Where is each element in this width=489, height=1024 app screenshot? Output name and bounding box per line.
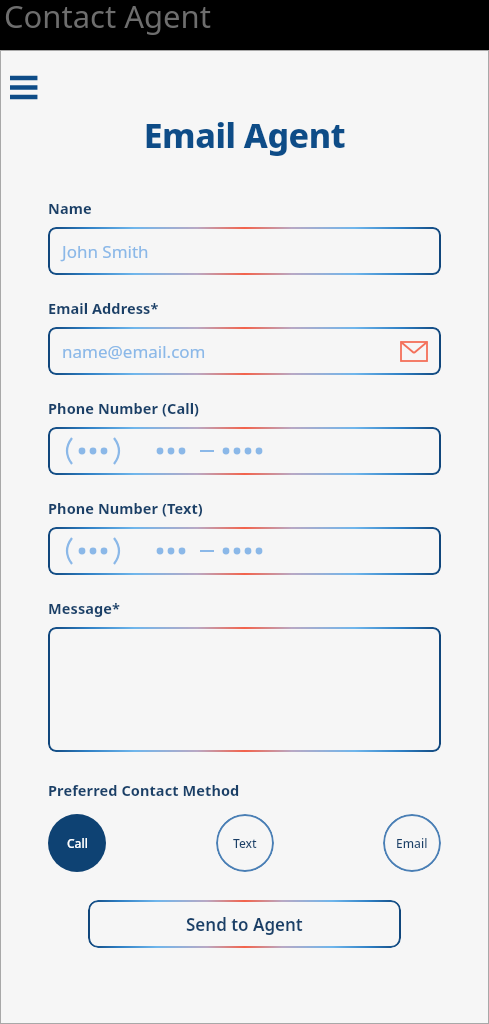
staticText: Email Agent xyxy=(0,112,489,158)
staticText: Email xyxy=(396,835,428,851)
button[interactable]: Menu xyxy=(8,66,48,106)
button[interactable]: Call xyxy=(48,814,106,872)
button[interactable]: Text xyxy=(216,814,274,872)
button[interactable]: John Smith xyxy=(48,227,441,275)
staticText: name@email.com xyxy=(62,340,401,363)
staticText: Call xyxy=(67,835,88,851)
button[interactable] xyxy=(48,527,441,575)
staticText: Name xyxy=(48,198,92,218)
staticText: Phone Number (Text) xyxy=(48,498,203,518)
button[interactable]: Email xyxy=(383,814,441,872)
staticText: Contact Agent xyxy=(4,0,211,37)
staticText: John Smith xyxy=(62,240,149,263)
button[interactable] xyxy=(48,627,441,752)
staticText: Preferred Contact Method xyxy=(48,780,240,800)
other: Email xyxy=(401,342,427,361)
button[interactable] xyxy=(48,427,441,475)
button[interactable]: Send to Agent xyxy=(88,900,401,948)
staticText: Phone Number (Call) xyxy=(48,398,200,418)
staticText: Message* xyxy=(48,598,121,618)
staticText: Send to Agent xyxy=(186,913,303,936)
staticText: Text xyxy=(233,835,257,851)
staticText: Email Address* xyxy=(48,298,159,318)
button[interactable]: name@email.com xyxy=(48,327,441,375)
